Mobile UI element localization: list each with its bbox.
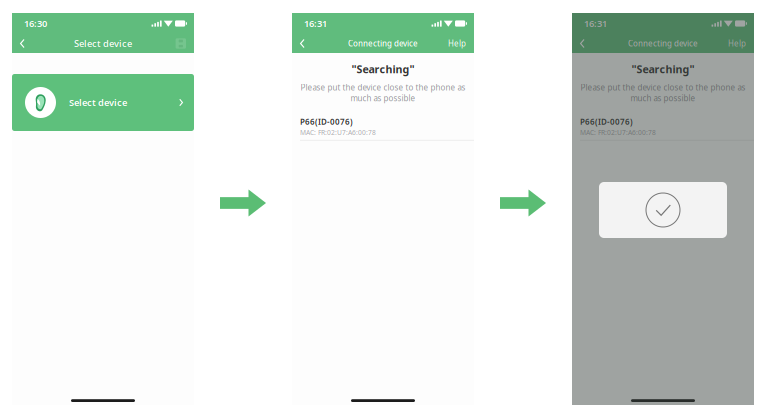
button[interactable]: Scan (175, 34, 186, 53)
staticText: Please put the device close to the phone… (580, 82, 745, 93)
staticText: 16:30 (24, 17, 47, 30)
staticText: MAC: FR:02:U7:A6:00:78 (580, 128, 656, 137)
staticText: Help (448, 38, 466, 49)
staticText: "Searching" (631, 62, 694, 76)
button[interactable]: Help (448, 34, 466, 53)
button[interactable]: Back (300, 34, 316, 53)
staticText: Connecting device (628, 38, 698, 49)
staticText: much as possible (630, 93, 695, 103)
button[interactable]: Help (728, 34, 746, 53)
staticText: Help (728, 38, 746, 49)
staticText: Select device (69, 96, 127, 109)
staticText: much as possible (350, 93, 415, 103)
button[interactable]: Back (20, 34, 36, 53)
button[interactable]: Select device (12, 74, 194, 131)
staticText: 16:31 (304, 17, 327, 30)
staticText: 16:31 (584, 17, 607, 30)
staticText: Please put the device close to the phone… (300, 82, 465, 93)
staticText: MAC: FR:02:U7:A6:00:78 (300, 128, 376, 137)
staticText: Select device (74, 37, 132, 50)
staticText: "Searching" (351, 62, 414, 76)
staticText: P66(ID-0076) (580, 116, 633, 127)
staticText: Connecting device (348, 38, 418, 49)
button[interactable]: Back (580, 34, 596, 53)
staticText: P66(ID-0076) (300, 116, 353, 127)
